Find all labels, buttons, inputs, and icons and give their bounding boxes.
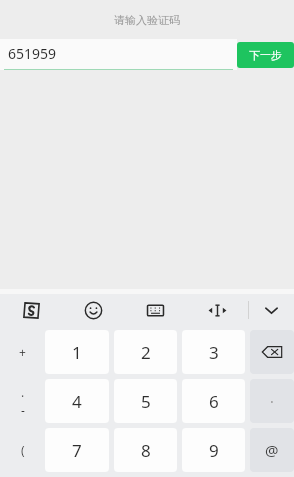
staticText: + — [19, 344, 26, 360]
button[interactable]: Hide keyboard — [249, 294, 294, 326]
button[interactable]: 下一步 — [237, 42, 294, 68]
button[interactable]: Backspace — [250, 330, 294, 374]
button[interactable]: . — [0, 379, 45, 423]
staticText: 下一步 — [249, 48, 282, 62]
staticText: 请输入验证码 — [114, 13, 180, 27]
staticText: 651959 — [8, 44, 57, 63]
button[interactable]: 651959 — [0, 39, 237, 70]
staticText: @ — [265, 440, 279, 460]
button[interactable]: 3 — [182, 330, 245, 374]
staticText: 5 — [141, 390, 151, 413]
button[interactable]: Move cursor — [186, 294, 248, 326]
staticText: 6 — [209, 390, 219, 413]
staticText: 4 — [72, 390, 82, 413]
staticText: 8 — [141, 439, 151, 462]
button[interactable]: Keyboard layout — [124, 294, 186, 326]
button[interactable]: + — [0, 330, 45, 374]
staticText: 3 — [209, 341, 219, 364]
button[interactable]: Emoji — [62, 294, 124, 326]
staticText: . — [21, 384, 25, 400]
staticText: 9 — [209, 439, 219, 462]
staticText: 7 — [72, 439, 82, 462]
button[interactable]: Sogou input method — [0, 294, 62, 326]
staticText: 1 — [72, 341, 82, 364]
button[interactable]: 2 — [114, 330, 177, 374]
button[interactable]: @ — [250, 428, 294, 472]
button[interactable]: ( — [0, 428, 45, 472]
staticText: - — [21, 402, 25, 418]
button[interactable]: 7 — [45, 428, 109, 472]
staticText: ( — [21, 442, 25, 458]
button[interactable]: 8 — [114, 428, 177, 472]
button[interactable]: 9 — [182, 428, 245, 472]
staticText: · — [270, 392, 274, 411]
button[interactable]: 5 — [114, 379, 177, 423]
staticText: 2 — [141, 341, 151, 364]
button[interactable]: 6 — [182, 379, 245, 423]
button[interactable]: 4 — [45, 379, 109, 423]
button[interactable]: 1 — [45, 330, 109, 374]
